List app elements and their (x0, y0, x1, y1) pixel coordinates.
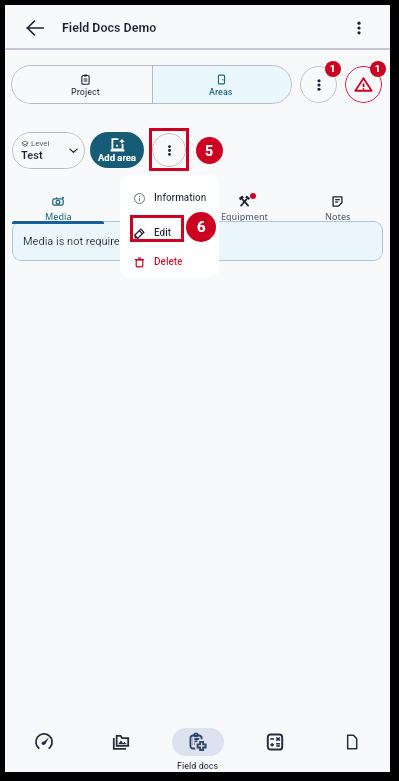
staticText: Equipment (221, 210, 269, 222)
button[interactable]: Areas (153, 65, 292, 104)
button[interactable]: Media is not required for this area (12, 221, 383, 261)
button[interactable]: Information (120, 185, 219, 211)
staticText: Level (31, 139, 50, 148)
button[interactable]: Photos (82, 723, 159, 772)
staticText: Field Docs Demo (62, 20, 157, 35)
staticText: Drawings (131, 210, 172, 222)
button[interactable]: Add area (90, 132, 144, 168)
staticText: Notes (325, 210, 351, 222)
staticText: Media (45, 210, 72, 222)
staticText: 1 (375, 64, 381, 75)
staticText: Edit (154, 227, 172, 239)
staticText: Field docs (177, 761, 219, 772)
staticText: Test (21, 149, 43, 162)
button[interactable]: Notes (291, 192, 384, 222)
staticText: 5 (205, 143, 214, 159)
staticText: Delete (154, 256, 183, 268)
button[interactable]: Delete (120, 249, 219, 275)
staticText: 1 (330, 64, 336, 75)
button[interactable]: Project (11, 65, 152, 104)
button[interactable]: Edit (120, 220, 219, 246)
staticText: Project (71, 87, 100, 98)
button[interactable]: Level (12, 132, 85, 169)
button[interactable]: Field docs (159, 723, 236, 772)
button[interactable]: Project menu (300, 66, 337, 103)
button[interactable]: Calculations (236, 723, 313, 772)
button[interactable]: Dashboard (5, 723, 82, 772)
staticText: Information (154, 192, 207, 204)
button[interactable]: Drawings (105, 192, 198, 222)
button[interactable]: Back (19, 12, 51, 44)
button[interactable]: Area options (152, 133, 186, 167)
staticText: Media is not required for this area (23, 235, 188, 248)
staticText: 6 (197, 218, 206, 236)
button[interactable]: Equipment (198, 192, 291, 222)
button[interactable]: Media (12, 192, 105, 222)
button[interactable]: More options (343, 12, 375, 44)
button[interactable]: Documents (313, 723, 390, 772)
button[interactable]: Warnings (345, 66, 382, 103)
staticText: Add area (98, 152, 136, 163)
staticText: Areas (209, 87, 233, 98)
